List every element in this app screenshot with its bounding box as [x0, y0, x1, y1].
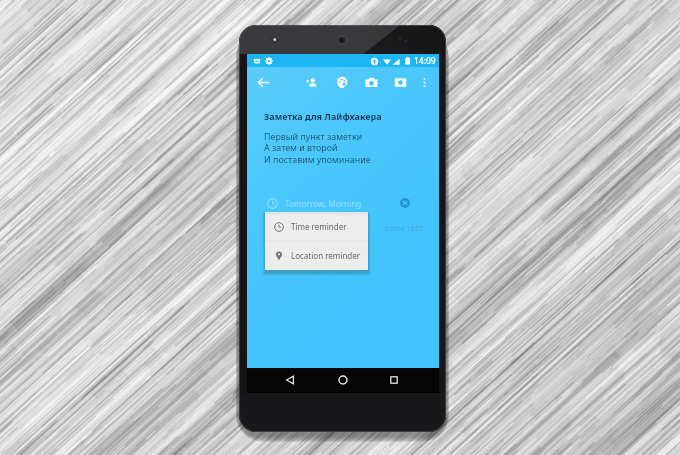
- button[interactable]: Camera: [360, 71, 382, 93]
- staticText: 14:09: [414, 55, 436, 67]
- staticText: Location reminder: [291, 250, 361, 261]
- button[interactable]: Remove reminder: [397, 195, 413, 211]
- button[interactable]: Back: [282, 372, 298, 388]
- staticText: Time reminder: [291, 221, 347, 232]
- button[interactable]: Tomorrow, Morning: [267, 195, 396, 211]
- staticText: Заметка для Лайфхакера: [264, 110, 382, 122]
- button[interactable]: Location reminder: [265, 241, 368, 270]
- staticText: Tomorrow, Morning: [285, 198, 362, 209]
- button[interactable]: Recents: [386, 372, 402, 388]
- button[interactable]: Time reminder: [265, 212, 368, 241]
- button[interactable]: Back: [252, 71, 274, 93]
- staticText: Edited 13:55: [385, 224, 424, 233]
- button[interactable]: More options: [413, 71, 435, 93]
- button[interactable]: Home: [335, 372, 351, 388]
- button[interactable]: Add collaborator: [301, 71, 323, 93]
- button[interactable]: Change color: [331, 71, 353, 93]
- button[interactable]: Archive: [389, 71, 411, 93]
- staticText: Первый пункт заметки А затем и второй И …: [264, 130, 371, 166]
